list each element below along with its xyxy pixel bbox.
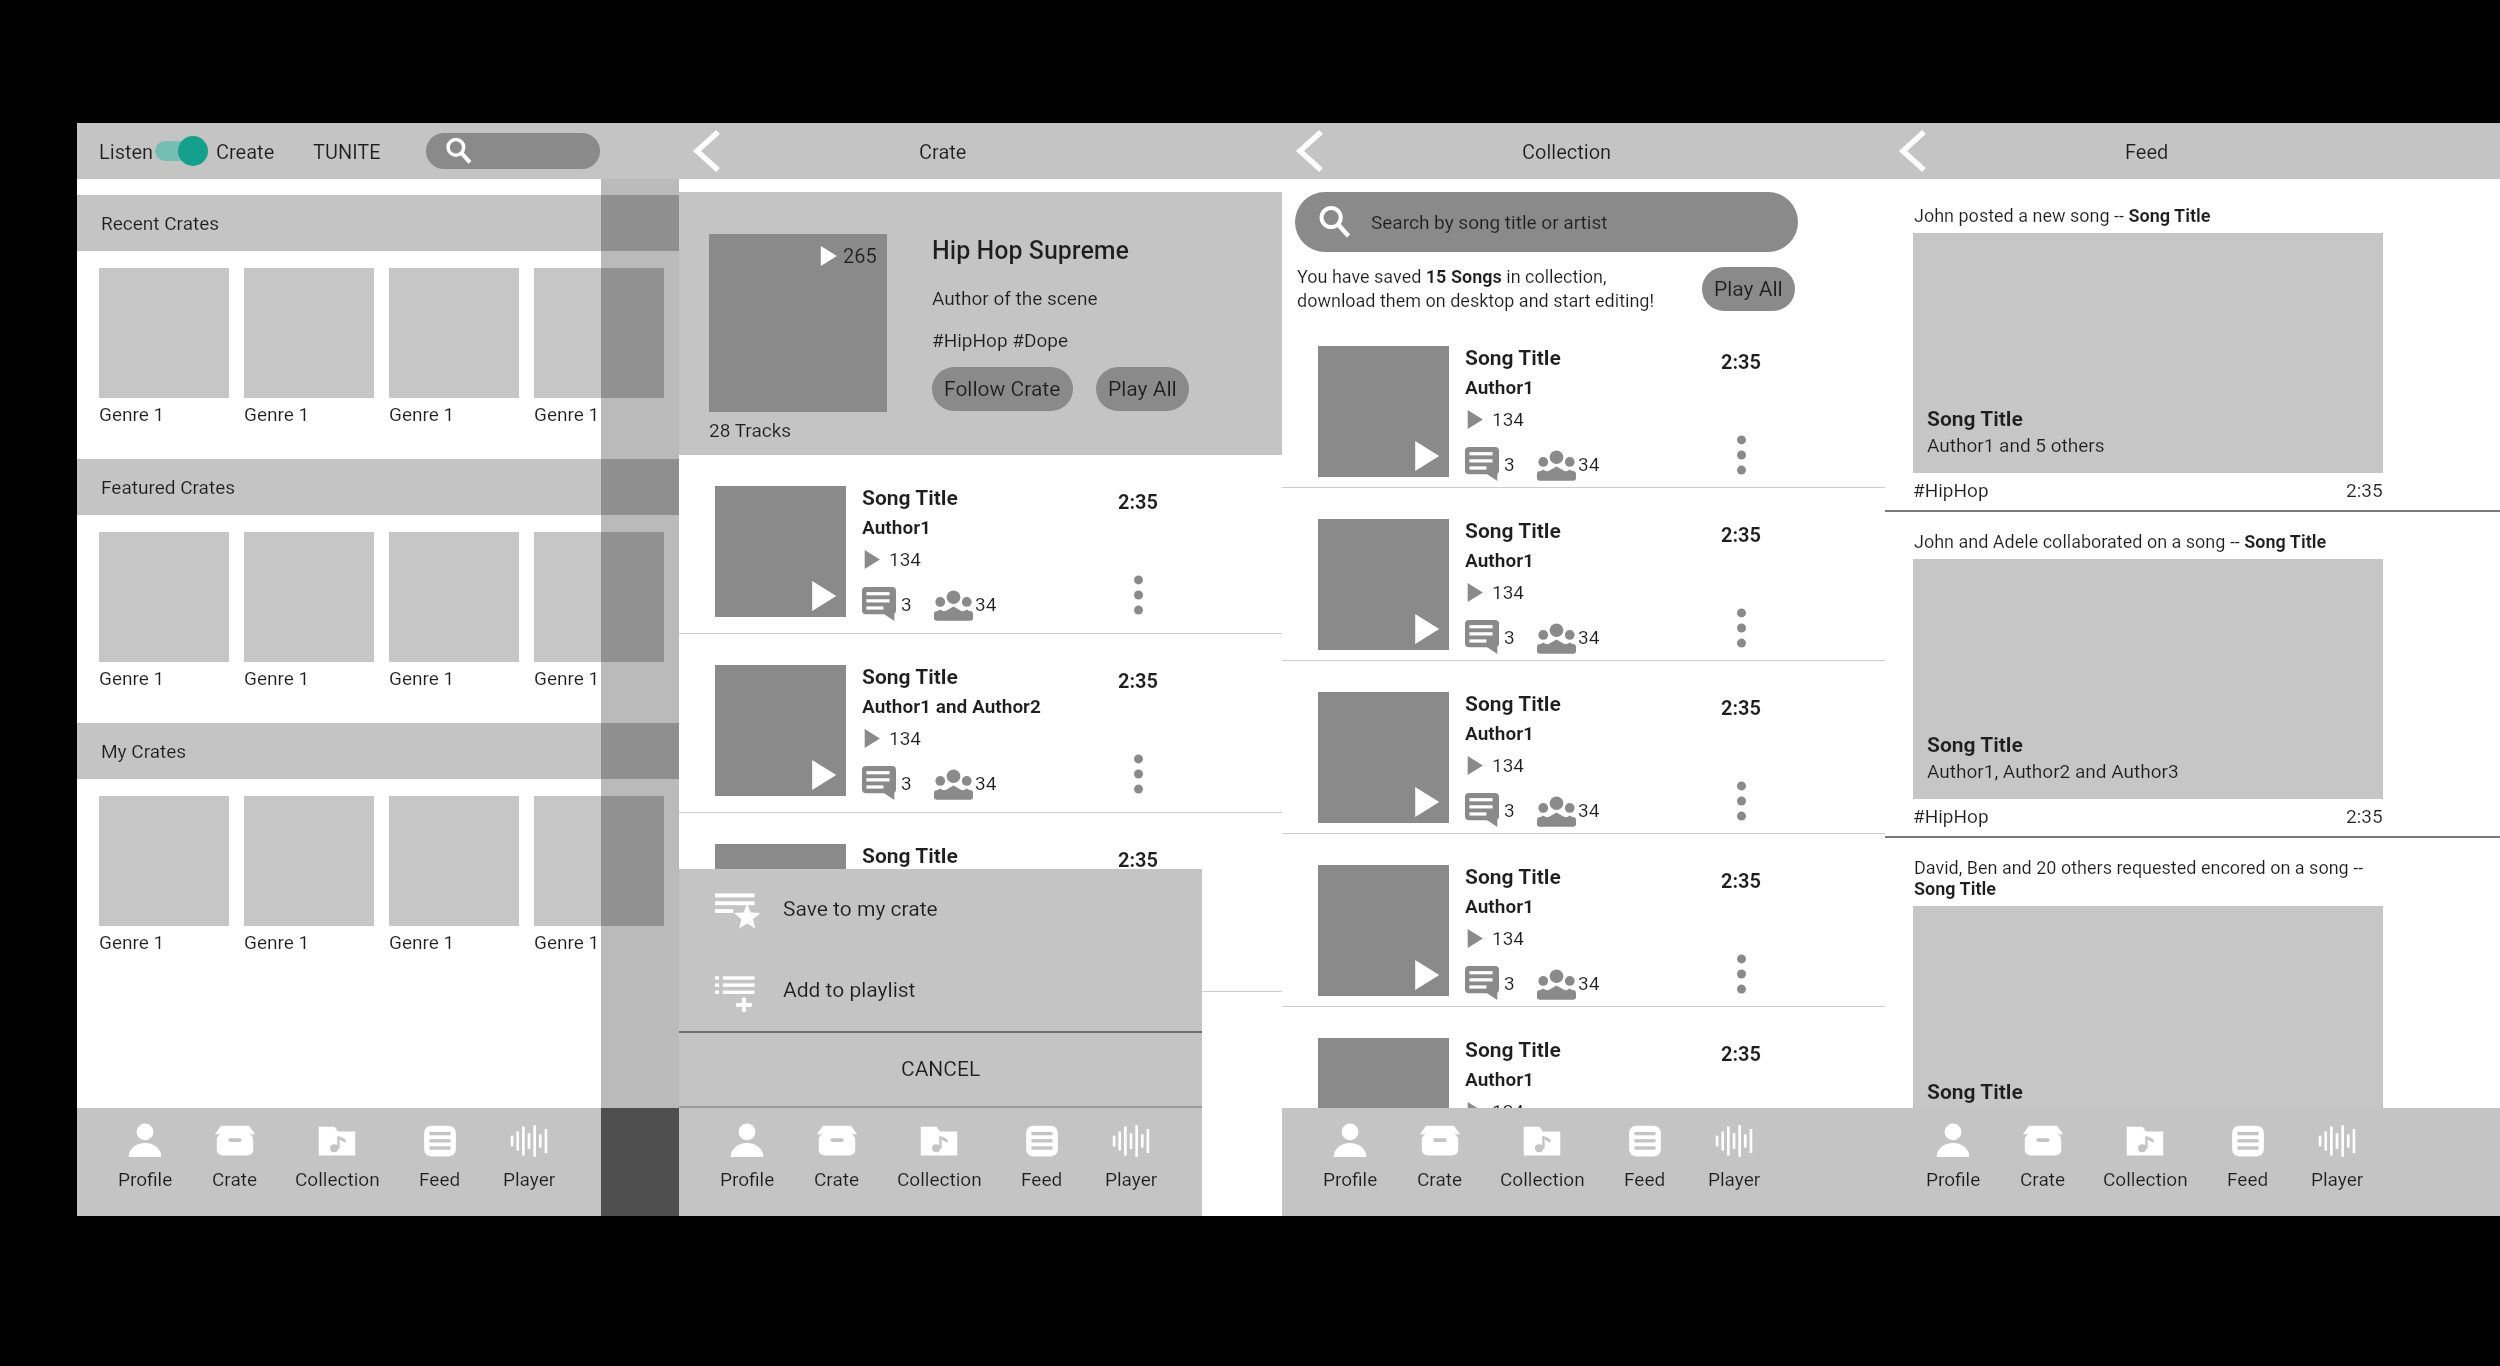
button[interactable]: Feed — [2188, 1108, 2308, 1216]
button[interactable]: Song Title — [1282, 1007, 1885, 1180]
button[interactable]: Back — [1885, 123, 1941, 179]
staticText: CANCEL — [901, 1057, 981, 1082]
staticText: 2:35 — [2346, 479, 2383, 501]
staticText: Crate — [212, 1168, 258, 1190]
button[interactable]: Collection — [277, 1108, 397, 1216]
staticText: Author1, Author2 and Author3 — [1927, 760, 2179, 782]
button[interactable]: Save to my crate — [679, 869, 1202, 950]
button[interactable]: John and Adele collaborated on a song --… — [1885, 512, 2500, 838]
staticText: Song Title — [1465, 519, 1561, 544]
button[interactable]: Back — [679, 123, 735, 179]
button[interactable]: Genre 1 — [389, 268, 534, 425]
button[interactable]: My Crates — [77, 723, 679, 779]
button[interactable]: Song Title — [679, 455, 1282, 634]
button[interactable]: Back — [1282, 123, 1338, 179]
button[interactable]: Feed — [982, 1108, 1102, 1216]
staticText: Genre 1 — [534, 403, 600, 425]
staticText: David, Ben and 20 others requested encor… — [1914, 857, 2364, 899]
staticText: Add to playlist — [783, 978, 916, 1003]
button[interactable]: Collection — [2085, 1108, 2205, 1216]
button[interactable]: Play All — [1096, 367, 1189, 411]
staticText: 2:35 — [1721, 869, 1762, 892]
staticText: Hip Hop Supreme — [932, 236, 1129, 265]
staticText: 2:35 — [1118, 490, 1159, 513]
button[interactable]: Song Title — [679, 813, 1282, 992]
staticText: Genre 1 — [244, 931, 310, 953]
staticText: 2:35 — [1118, 669, 1159, 692]
button[interactable]: More options — [1683, 427, 1799, 483]
button[interactable]: Profile — [1893, 1108, 2013, 1216]
button[interactable]: Add to playlist — [679, 950, 1202, 1031]
button[interactable]: More options — [1683, 600, 1799, 656]
button[interactable]: Genre 1 — [99, 532, 244, 689]
button[interactable]: Player — [469, 1108, 589, 1216]
staticText: Genre 1 — [389, 403, 455, 425]
button[interactable]: More options — [1683, 773, 1799, 829]
button[interactable]: Genre 1 — [99, 796, 244, 953]
button[interactable]: Genre 1 — [534, 796, 679, 953]
button[interactable]: Player — [1071, 1108, 1191, 1216]
button[interactable]: Feed — [380, 1108, 500, 1216]
staticText: 3 — [1504, 453, 1515, 475]
button[interactable]: Genre 1 — [389, 532, 534, 689]
button[interactable]: Genre 1 — [99, 268, 244, 425]
button[interactable]: More options — [1080, 567, 1196, 623]
button[interactable]: Genre 1 — [389, 796, 534, 953]
staticText: 2:35 — [1721, 696, 1762, 719]
staticText: Author of the scene — [932, 287, 1098, 309]
button[interactable]: Player — [2277, 1108, 2397, 1216]
button[interactable]: Genre 1 — [534, 532, 679, 689]
button[interactable]: Listen Create toggle — [155, 136, 208, 166]
staticText: Player — [503, 1168, 556, 1190]
button[interactable]: John posted a new song -- Song Title — [1885, 186, 2500, 512]
staticText: Song Title — [862, 486, 958, 511]
staticText: Song Title — [1465, 865, 1561, 890]
button[interactable]: Genre 1 — [244, 268, 389, 425]
staticText: Feed — [2227, 1168, 2269, 1190]
button[interactable]: Collection — [1482, 1108, 1602, 1216]
staticText: Follow Crate — [944, 377, 1061, 402]
button[interactable]: Crate — [175, 1108, 295, 1216]
button[interactable]: Song Title — [679, 634, 1282, 813]
button[interactable]: Genre 1 — [244, 796, 389, 953]
staticText: Song Title — [1465, 692, 1561, 717]
button[interactable]: Song Title — [1282, 661, 1885, 834]
button[interactable]: Song Title — [1282, 834, 1885, 1007]
button[interactable]: Feed — [1585, 1108, 1705, 1216]
staticText: 2:35 — [1721, 350, 1762, 373]
button[interactable]: More options — [1683, 946, 1799, 1002]
button[interactable]: Search — [426, 133, 600, 169]
button[interactable]: Search by song title or artist — [1295, 192, 1798, 252]
button[interactable]: More options — [1683, 1119, 1799, 1175]
button[interactable]: 265 — [709, 234, 887, 412]
button[interactable]: Collection — [879, 1108, 999, 1216]
button[interactable]: Player — [1674, 1108, 1794, 1216]
button[interactable]: Crate — [1983, 1108, 2103, 1216]
staticText: 2:35 — [1721, 523, 1762, 546]
button[interactable]: Featured Crates — [77, 459, 679, 515]
staticText: TUNITE — [313, 140, 381, 163]
staticText: Song Title — [1927, 407, 2023, 432]
button[interactable]: Genre 1 — [534, 268, 679, 425]
button[interactable]: Profile — [85, 1108, 205, 1216]
button[interactable]: More options — [1080, 746, 1196, 802]
staticText: 265 — [843, 244, 877, 267]
button[interactable]: Crate — [1380, 1108, 1500, 1216]
button[interactable]: Recent Crates — [77, 195, 679, 251]
staticText: Play All — [1108, 377, 1177, 402]
button[interactable]: Song Title — [1282, 488, 1885, 661]
button[interactable]: Genre 1 — [244, 532, 389, 689]
staticText: Song Title — [1465, 1038, 1561, 1063]
button[interactable]: CANCEL — [679, 1033, 1202, 1106]
button[interactable]: Play All — [1702, 267, 1795, 311]
button[interactable]: Profile — [1290, 1108, 1410, 1216]
button[interactable]: Song Title — [1282, 315, 1885, 488]
button[interactable]: Follow Crate — [932, 367, 1073, 411]
button[interactable]: David, Ben and 20 others requested encor… — [1885, 838, 2500, 1146]
staticText: #HipHop — [1913, 805, 1989, 827]
staticText: 3 — [1504, 972, 1515, 994]
button[interactable]: Profile — [687, 1108, 807, 1216]
staticText: Profile — [720, 1168, 775, 1190]
button[interactable]: Crate — [777, 1108, 897, 1216]
